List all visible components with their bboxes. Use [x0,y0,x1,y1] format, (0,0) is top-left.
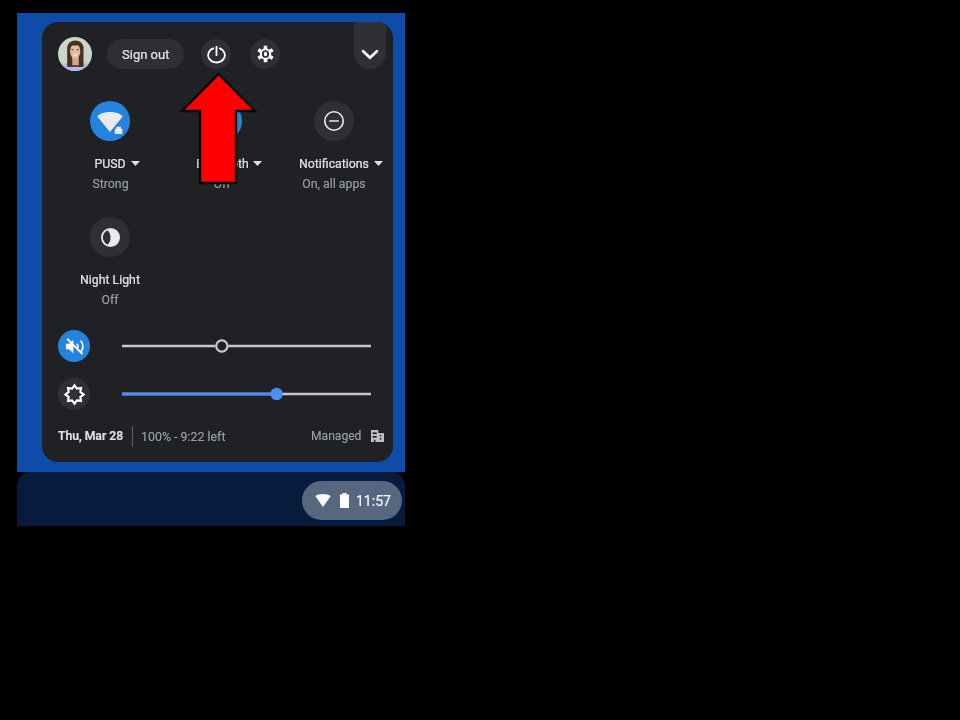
staticText: 100% - 9:22 left [141,429,226,444]
staticText: On, all apps [302,177,366,191]
button[interactable]: Brightness [58,378,90,410]
staticText: Off [101,293,119,307]
staticText: PUSD [94,157,126,171]
staticText: Thu, Mar 28 [58,429,124,443]
button[interactable]: Power [201,39,231,69]
button[interactable]: Mute volume [58,330,90,362]
staticText: Night Light [80,273,140,287]
staticText: Sign out [122,47,170,62]
staticText: Managed [311,429,362,443]
button[interactable]: Managed [311,429,384,443]
button[interactable]: Status tray: wifi, battery, 11:57 [302,481,402,520]
staticText: Strong [92,177,129,191]
staticText: Off [213,177,231,191]
button[interactable]: Collapse quick settings [354,22,386,69]
button[interactable]: Settings [250,39,280,69]
staticText: Notifications [299,157,369,171]
button[interactable]: Sign out [107,39,184,69]
button[interactable]: Account avatar [58,37,92,71]
staticText: Bluetooth [196,157,249,171]
button[interactable]: Notifications [278,99,390,190]
button[interactable]: PUSD [54,99,166,190]
staticText: 11:57 [356,493,391,509]
button[interactable]: Bluetooth [166,99,278,190]
button[interactable]: Night Light [54,215,166,306]
